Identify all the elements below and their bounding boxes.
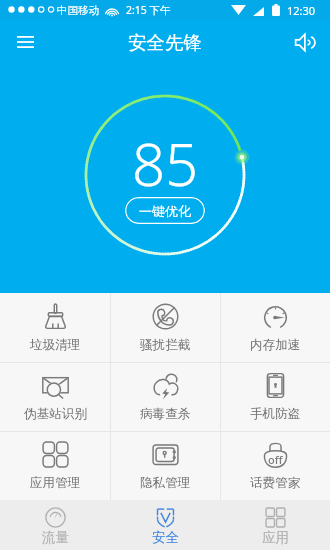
staticText: 安全先锋 — [128, 31, 202, 54]
staticText: 2:15 下午 — [126, 3, 171, 17]
button[interactable]: 应用管理 — [0, 432, 110, 500]
staticText: 流量 — [42, 529, 69, 546]
staticText: 中国移动 — [57, 4, 99, 17]
staticText: 手机防盗 — [250, 406, 301, 422]
button[interactable]: Menu — [10, 27, 40, 57]
button[interactable]: 垃圾清理 — [0, 293, 110, 362]
staticText: 安全 — [152, 529, 179, 546]
button[interactable]: off — [221, 432, 330, 500]
button[interactable]: 骚扰拦截 — [111, 293, 220, 362]
button[interactable]: 流量 — [0, 500, 110, 550]
staticText: 骚扰拦截 — [140, 337, 191, 353]
staticText: 内存加速 — [250, 337, 301, 353]
staticText: off — [268, 452, 283, 467]
button[interactable]: 隐私管理 — [111, 432, 220, 500]
button[interactable]: 安全 — [110, 500, 220, 550]
staticText: 85 — [132, 124, 199, 203]
staticText: 话费管家 — [250, 475, 301, 491]
button[interactable]: 伪基站识别 — [0, 363, 110, 431]
staticText: 应用 — [262, 529, 289, 546]
staticText: 隐私管理 — [140, 475, 191, 491]
staticText: 12:30 — [287, 3, 316, 18]
staticText: 伪基站识别 — [24, 406, 87, 422]
staticText: 垃圾清理 — [30, 337, 81, 353]
staticText: 应用管理 — [30, 475, 81, 491]
button[interactable]: 一键优化 — [125, 197, 205, 224]
staticText: 一键优化 — [139, 203, 191, 219]
staticText: 病毒查杀 — [140, 406, 191, 422]
button[interactable]: 手机防盗 — [221, 363, 330, 431]
button[interactable]: 病毒查杀 — [111, 363, 220, 431]
button[interactable]: 应用 — [220, 500, 330, 550]
button[interactable]: Sound — [290, 27, 320, 57]
button[interactable]: 内存加速 — [221, 293, 330, 362]
